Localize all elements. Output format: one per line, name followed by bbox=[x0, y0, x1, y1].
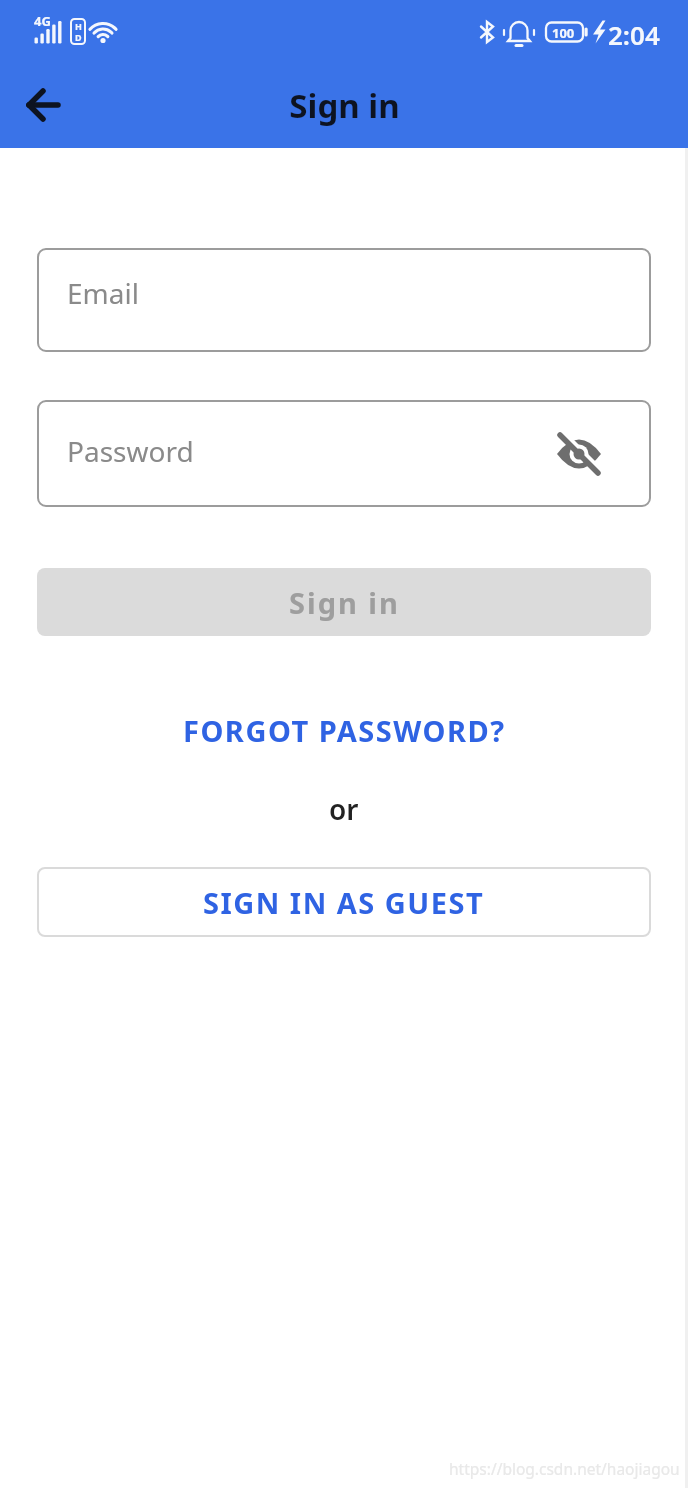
button[interactable]: Sign in bbox=[37, 568, 651, 636]
staticText: D bbox=[75, 31, 82, 43]
button[interactable] bbox=[14, 75, 74, 135]
staticText: Sign in bbox=[289, 83, 400, 128]
staticText: SIGN IN AS GUEST bbox=[203, 883, 485, 922]
staticText: 4G bbox=[34, 12, 51, 30]
staticText: Sign in bbox=[289, 583, 400, 622]
staticText: H bbox=[75, 20, 82, 32]
button[interactable]: Password bbox=[37, 400, 651, 507]
staticText: https://blog.csdn.net/haojiagou bbox=[449, 1458, 680, 1479]
staticText: or bbox=[329, 790, 359, 828]
button[interactable]: Email bbox=[37, 248, 651, 352]
staticText: FORGOT PASSWORD? bbox=[183, 711, 506, 750]
button[interactable] bbox=[557, 432, 601, 476]
staticText: Email bbox=[67, 274, 139, 312]
staticText: Password bbox=[67, 432, 194, 470]
button[interactable]: FORGOT PASSWORD? bbox=[37, 711, 651, 750]
staticText: 2:04 bbox=[608, 17, 660, 52]
button[interactable]: SIGN IN AS GUEST bbox=[37, 867, 651, 937]
staticText: 100 bbox=[552, 24, 575, 42]
